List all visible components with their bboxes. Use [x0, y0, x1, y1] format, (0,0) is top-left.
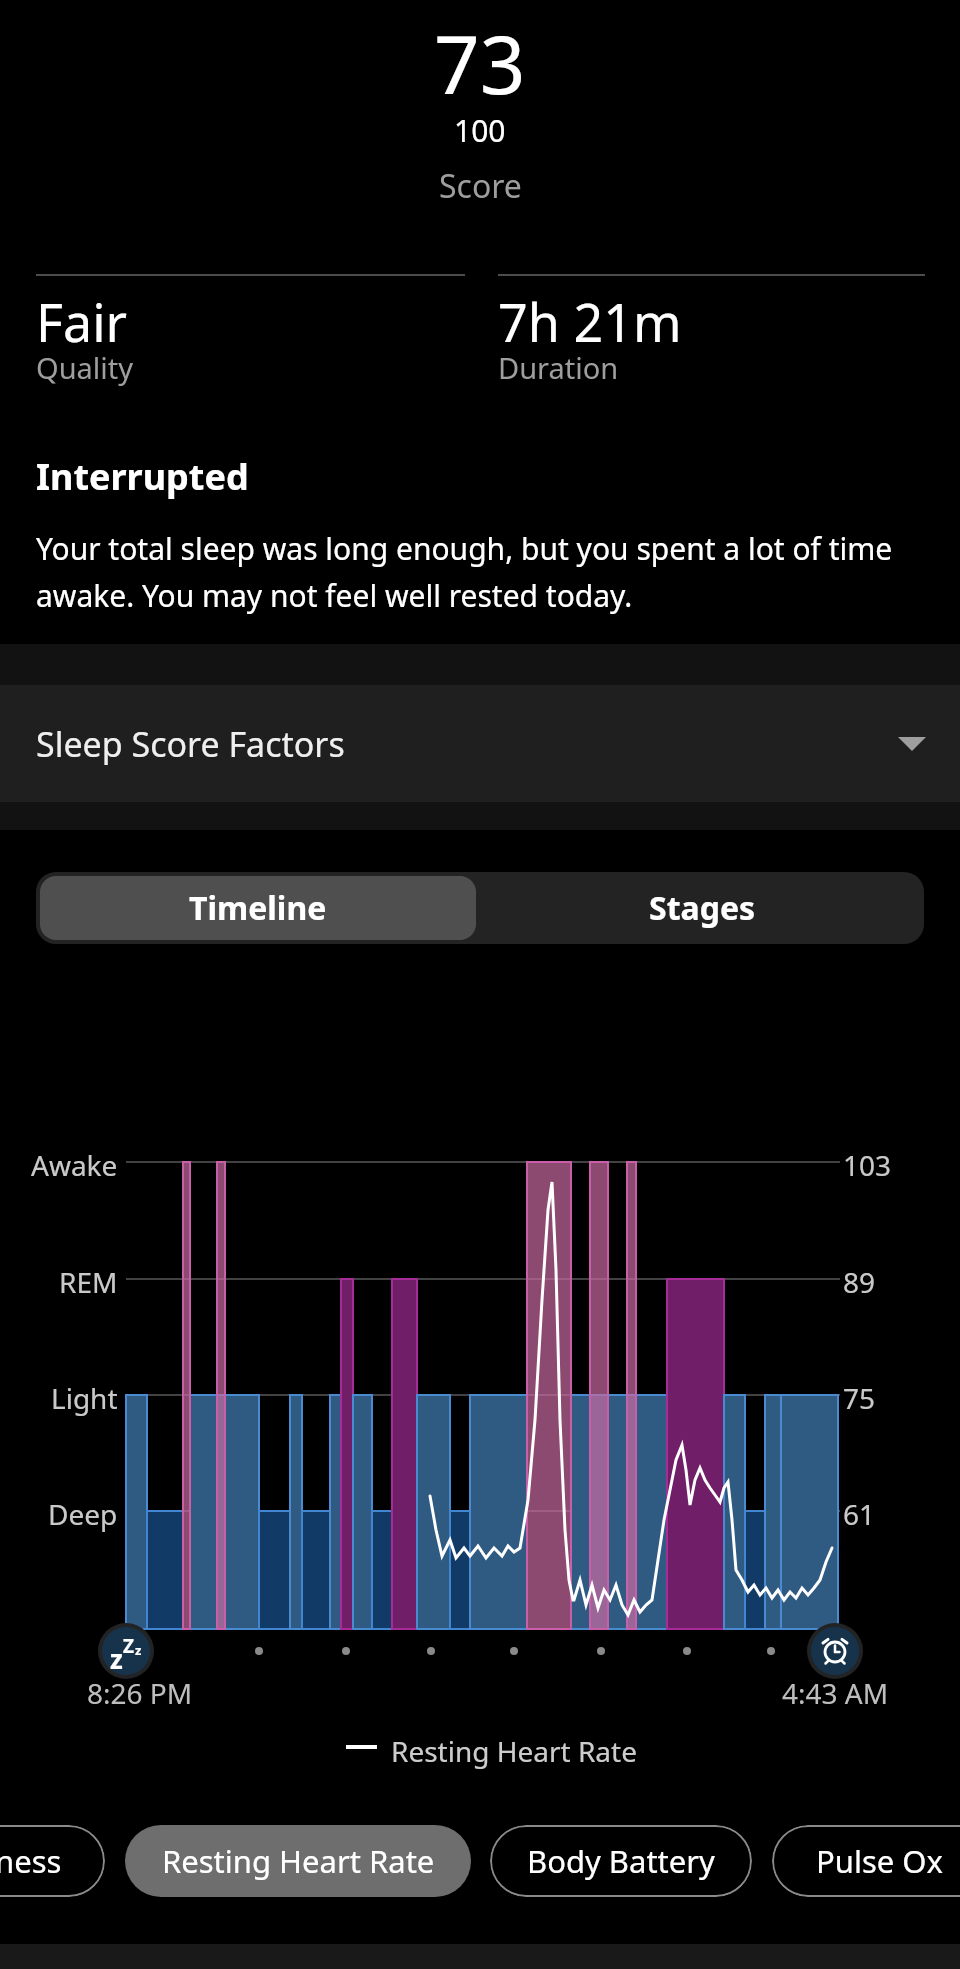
staticText: Body Battery [527, 1840, 715, 1882]
staticText: Score [439, 164, 522, 208]
staticText: 103 [843, 1146, 892, 1184]
button[interactable]: Resting Heart Rate [125, 1825, 471, 1897]
staticText: z [110, 1641, 123, 1675]
staticText: ness [0, 1840, 62, 1882]
staticText: 61 [843, 1495, 876, 1533]
staticText: Interrupted [36, 452, 249, 501]
staticText: Awake [31, 1146, 118, 1184]
staticText: Timeline [189, 886, 327, 930]
staticText: 7h 21m [498, 286, 682, 357]
staticText: Resting Heart Rate [391, 1732, 637, 1770]
staticText: z [135, 1641, 142, 1659]
staticText: awake. You may not feel well rested toda… [36, 575, 633, 616]
staticText: 100 [454, 110, 506, 151]
staticText: Deep [48, 1495, 118, 1533]
button[interactable]: Stages [480, 872, 924, 944]
button[interactable]: Body Battery [490, 1825, 752, 1897]
staticText: Sleep Score Factors [36, 721, 345, 767]
staticText: 4:43 AM [782, 1674, 889, 1712]
staticText: Stages [649, 886, 756, 930]
button[interactable]: Timeline [40, 876, 476, 940]
button[interactable]: ness [0, 1825, 105, 1897]
staticText: Z [123, 1633, 135, 1659]
staticText: Fair [36, 286, 128, 357]
staticText: 73 [434, 8, 526, 117]
staticText: Quality [36, 348, 134, 387]
staticText: Your total sleep was long enough, but yo… [36, 528, 893, 569]
staticText: Resting Heart Rate [162, 1840, 435, 1882]
staticText: REM [59, 1263, 118, 1301]
staticText: Pulse Ox [816, 1840, 943, 1882]
button[interactable]: Sleep Score Factors [0, 685, 960, 802]
staticText: Duration [498, 348, 619, 387]
staticText: 8:26 PM [87, 1674, 193, 1712]
button[interactable]: Pulse Ox [772, 1825, 960, 1897]
staticText: 89 [843, 1263, 876, 1301]
staticText: Light [51, 1379, 118, 1417]
staticText: 75 [843, 1379, 876, 1417]
